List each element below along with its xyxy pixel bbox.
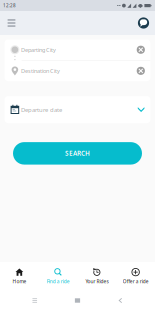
button[interactable]: Home [69,291,85,310]
button[interactable]: Your Rides [77,262,116,291]
button[interactable]: Recents [27,291,43,310]
button[interactable]: Offer a ride [116,262,155,291]
button[interactable]: Back [112,291,128,310]
button[interactable]: Home [0,262,39,291]
staticText: Offer a ride [123,278,149,285]
button[interactable]: Find a ride [39,262,78,291]
button[interactable]: Messages [133,11,153,35]
staticText: Your Rides [85,278,108,285]
staticText: Home [12,278,26,285]
staticText: SEARCH [65,149,90,158]
staticText: 12:28 [3,2,16,9]
button[interactable]: Departure date [5,96,150,123]
button[interactable]: Departing City [5,39,150,60]
staticText: Destination City [21,67,60,75]
staticText: Find a ride [47,278,70,285]
staticText: Departing City [21,46,56,53]
button[interactable]: SEARCH [13,142,142,165]
button[interactable]: Menu [1,11,21,35]
staticText: Departure date [21,106,62,114]
button[interactable]: Destination City [5,61,150,81]
